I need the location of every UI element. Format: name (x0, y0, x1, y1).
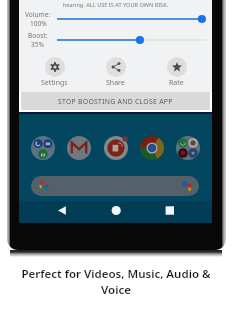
button[interactable]: News (104, 136, 128, 160)
button[interactable]: Google folder (31, 136, 55, 160)
button[interactable]: Settings (24, 57, 85, 88)
staticText: Boost: (28, 31, 48, 40)
staticText: Volume: (25, 10, 51, 19)
staticText: Rate (169, 78, 184, 88)
staticText: STOP BOOSTING AND CLOSE APP (58, 97, 173, 106)
staticText: Settings (41, 78, 68, 88)
staticText: Perfect for Videos, Music, Audio & Voice (20, 266, 212, 297)
button[interactable]: Google search (31, 176, 199, 196)
button[interactable]: Chrome (140, 136, 164, 160)
button[interactable]: Boost: (57, 33, 206, 47)
staticText: Share (106, 78, 125, 88)
staticText: 100% (30, 19, 47, 28)
button[interactable]: Share (85, 57, 146, 88)
staticText: 35% (31, 40, 45, 49)
button[interactable]: Apps folder (176, 136, 200, 160)
button[interactable]: Volume: (57, 12, 206, 26)
button[interactable]: Rate (146, 57, 207, 88)
button[interactable]: STOP BOOSTING AND CLOSE APP (21, 92, 210, 110)
button[interactable]: Gmail (67, 136, 91, 160)
staticText: hearing. ALL USE IS AT YOUR OWN RISK. (19, 1, 212, 9)
